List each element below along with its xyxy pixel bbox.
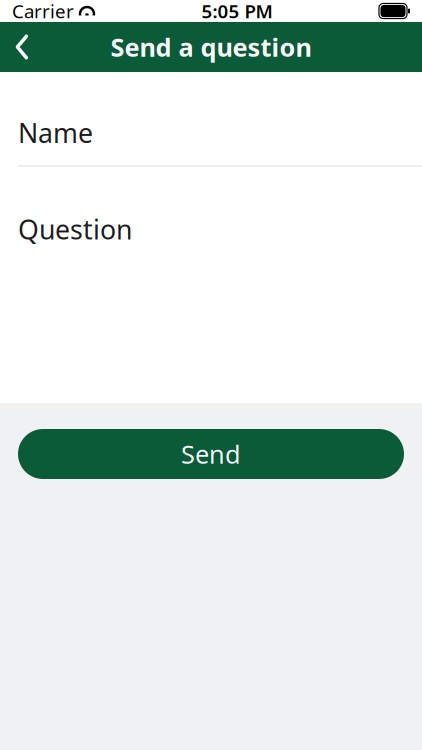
staticText: Question <box>18 211 132 247</box>
staticText: Name <box>18 115 93 150</box>
staticText: Carrier <box>12 0 74 23</box>
button[interactable]: Back <box>0 22 44 72</box>
staticText: Send <box>181 437 241 471</box>
staticText: 5:05 PM <box>201 0 272 23</box>
staticText: Send a question <box>110 30 311 64</box>
button[interactable]: Send <box>18 429 404 479</box>
